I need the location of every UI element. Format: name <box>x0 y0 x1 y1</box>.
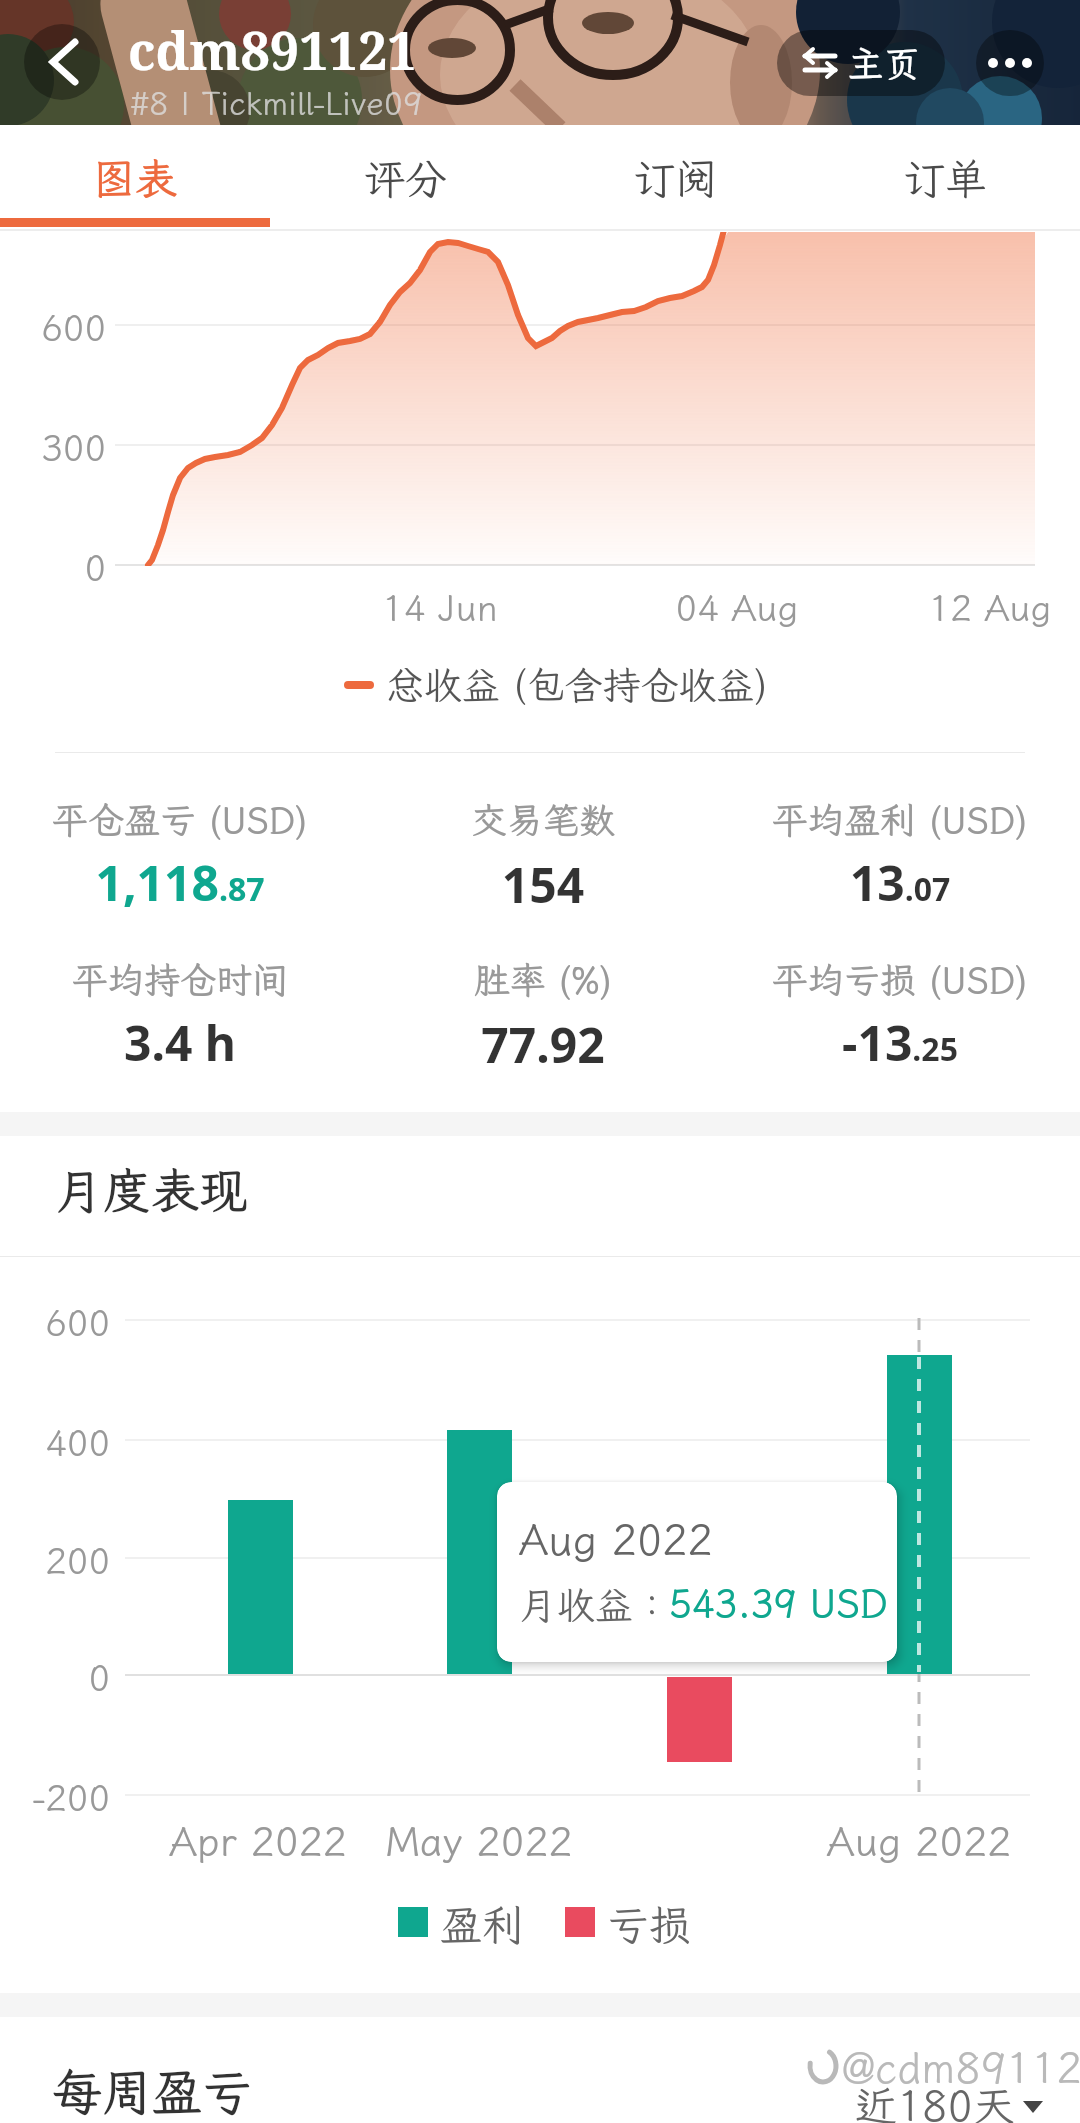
staticText: 月度表现 <box>55 1158 248 1221</box>
button[interactable]: 图表 <box>0 125 270 232</box>
staticText: 0 <box>40 544 106 591</box>
staticText: 14 Jun <box>370 584 510 631</box>
staticText: 评分 <box>363 151 448 206</box>
staticText: 盈利 <box>440 1897 525 1952</box>
staticText: 订阅 <box>633 151 718 206</box>
staticText: 平均亏损 (USD) <box>758 956 1042 1003</box>
staticText: -200 <box>30 1774 110 1821</box>
button[interactable] <box>24 24 100 100</box>
staticText: Aug 2022 <box>819 1815 1019 1868</box>
staticText: 月收益： <box>519 1580 672 1630</box>
staticText: Apr 2022 <box>158 1815 358 1868</box>
staticText: 胜率 (%) <box>403 956 683 1003</box>
staticText: 近180天 <box>855 2078 1015 2123</box>
staticText: 1,118.87 <box>40 850 320 915</box>
staticText: -13.25 <box>758 1010 1042 1075</box>
staticText: 300 <box>40 424 106 471</box>
staticText: 77.92 <box>403 1012 683 1077</box>
staticText: 订单 <box>903 151 988 206</box>
staticText: 主页 <box>848 40 921 87</box>
staticText: 交易笔数 <box>403 796 683 843</box>
staticText: 平均盈利 (USD) <box>758 796 1042 843</box>
staticText: May 2022 <box>379 1815 579 1868</box>
staticText: @cdm891121 <box>842 2040 1080 2095</box>
staticText: #8 | Tickmill-Live09 <box>130 82 423 124</box>
staticText: 每周盈亏 <box>52 2058 252 2123</box>
staticText: 总收益 (包含持仓收益) <box>386 660 768 710</box>
button[interactable]: 评分 <box>270 125 540 232</box>
staticText: 平仓盈亏 (USD) <box>40 796 320 843</box>
staticText: 0 <box>30 1654 110 1701</box>
staticText: 400 <box>30 1419 110 1466</box>
staticText: 543.39 USD <box>669 1578 888 1628</box>
staticText: 亏损 <box>607 1897 692 1952</box>
button[interactable]: 订单 <box>810 125 1080 232</box>
staticText: 600 <box>30 1299 110 1346</box>
staticText: 12 Aug <box>920 584 1060 631</box>
button[interactable] <box>976 30 1044 96</box>
button[interactable]: 订阅 <box>540 125 810 232</box>
staticText: cdm891121 <box>128 14 417 85</box>
staticText: Aug 2022 <box>519 1512 713 1567</box>
staticText: 04 Aug <box>667 584 807 631</box>
staticText: 平均持仓时间 <box>40 956 320 1003</box>
staticText: 600 <box>40 304 106 351</box>
button[interactable]: 近180天 <box>855 2078 1043 2123</box>
staticText: 图表 <box>93 151 178 206</box>
button[interactable]: 主页 <box>777 30 945 96</box>
staticText: 200 <box>30 1537 110 1584</box>
staticText: 13.07 <box>758 850 1042 915</box>
staticText: 154 <box>403 852 683 917</box>
staticText: 3.4 h <box>40 1010 320 1075</box>
